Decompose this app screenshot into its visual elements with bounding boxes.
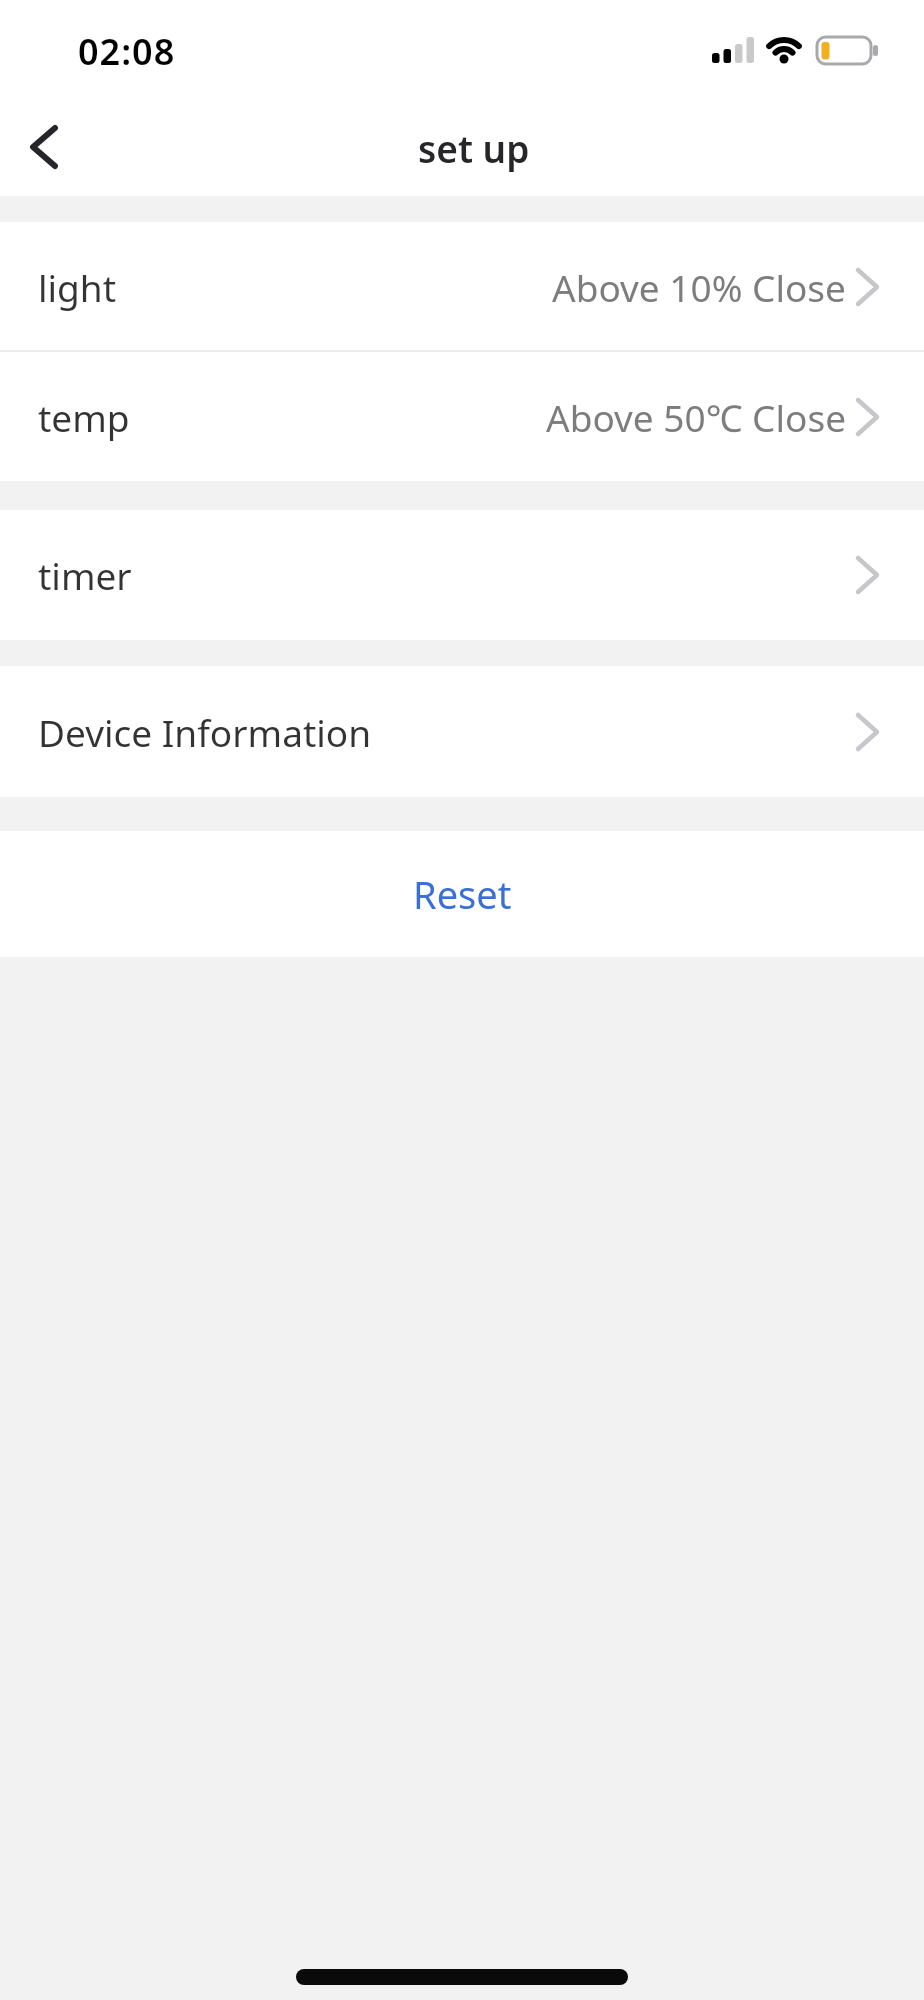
button[interactable]: light	[0, 222, 924, 352]
button[interactable]	[14, 118, 74, 178]
button[interactable]: Reset	[0, 831, 924, 957]
staticText: light	[38, 262, 117, 312]
staticText: 02:08	[78, 27, 176, 76]
staticText: set up	[418, 123, 530, 173]
staticText: Above 10% Close	[552, 262, 846, 312]
button[interactable]: Device Information	[0, 666, 924, 797]
button[interactable]: timer	[0, 510, 924, 640]
staticText: temp	[38, 392, 130, 442]
staticText: Device Information	[38, 707, 372, 757]
staticText: timer	[38, 550, 132, 600]
staticText: Reset	[413, 868, 512, 920]
button[interactable]: temp	[0, 352, 924, 481]
staticText: Above 50℃ Close	[546, 392, 846, 442]
